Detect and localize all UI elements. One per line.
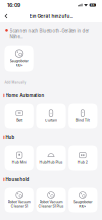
button[interactable]: Saugroboter [68, 187, 97, 212]
staticText: K10+ [16, 63, 23, 67]
button[interactable]: Bett [4, 103, 34, 128]
staticText: Ein Gerät hinzufü... [29, 13, 72, 19]
staticText: Robot Vacuum [39, 200, 62, 204]
staticText: Hub/Hub Plus [39, 160, 62, 164]
staticText: Add Manually [4, 80, 26, 84]
staticText: Bett [16, 118, 22, 122]
staticText: Scannen nach Bluetooth-Geräten in der [9, 28, 89, 33]
staticText: Saugroboter [10, 59, 29, 63]
staticText: Hub Mini [12, 160, 27, 164]
staticText: Cleaner S1 [11, 204, 28, 208]
staticText: Home Automation [6, 93, 45, 98]
staticText: Curtain [45, 118, 57, 122]
staticText: Cleaner S1 Plus [38, 204, 63, 208]
staticText: Blind Tilt [76, 118, 90, 122]
staticText: Hub 2 [78, 160, 88, 164]
button[interactable]: Hub 2 [68, 145, 97, 170]
staticText: K10+ [79, 204, 86, 208]
staticText: Robot Vacuum [8, 200, 31, 204]
staticText: Hub [6, 135, 15, 140]
button[interactable]: Curtain [36, 103, 66, 128]
staticText: Saugroboter [73, 200, 92, 204]
button[interactable]: Robot Vacuum [36, 187, 66, 212]
button[interactable]: Blind Tilt [68, 103, 97, 128]
button[interactable]: Hub/Hub Plus [36, 145, 66, 170]
button[interactable]: Robot Vacuum [4, 187, 34, 212]
button[interactable]: Hub Mini [4, 145, 34, 170]
staticText: Household [6, 177, 30, 182]
staticText: Nähe... [9, 34, 22, 39]
staticText: 65 [91, 3, 95, 7]
button[interactable]: Saugroboter [4, 46, 34, 72]
staticText: 16:09 [7, 2, 20, 8]
button[interactable]: Back [0, 11, 12, 21]
